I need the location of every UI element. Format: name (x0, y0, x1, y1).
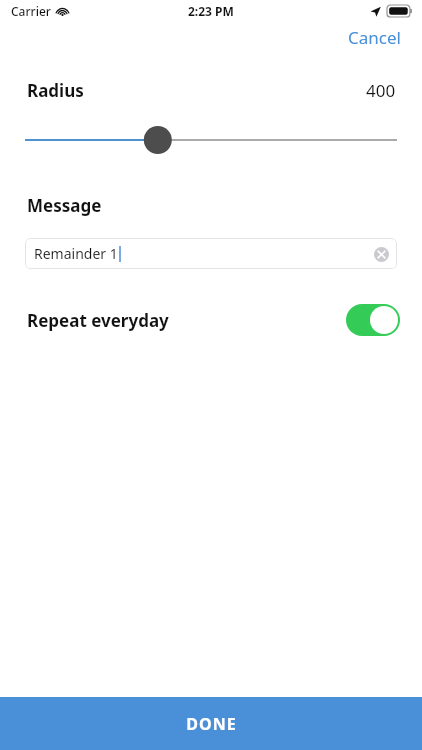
staticText: Cancel (348, 26, 401, 49)
button[interactable]: Radius slider (0, 124, 422, 156)
staticText: DONE (186, 713, 237, 735)
staticText: Remainder 1 (34, 244, 118, 263)
button[interactable]: Cancel (346, 24, 403, 51)
button[interactable]: DONE (0, 697, 422, 750)
staticText: 400 (366, 79, 396, 102)
staticText: Carrier (11, 3, 51, 19)
button[interactable]: Repeat everyday (0, 301, 422, 339)
staticText: Message (27, 194, 102, 217)
button[interactable]: Clear text (372, 245, 390, 263)
staticText: 2:23 PM (188, 3, 234, 19)
staticText: Repeat everyday (27, 309, 169, 332)
staticText: Radius (27, 79, 84, 102)
button[interactable]: Repeat everyday toggle (346, 304, 400, 336)
button[interactable]: Remainder 1 (25, 238, 397, 269)
